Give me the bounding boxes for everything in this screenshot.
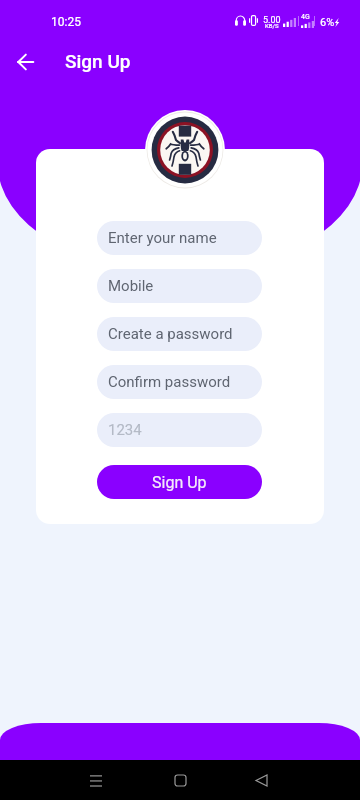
button[interactable]: Mobile: [97, 269, 262, 303]
staticText: Sign Up: [152, 473, 207, 492]
button[interactable]: Sign Up: [97, 465, 262, 499]
staticText: 6%: [320, 16, 335, 29]
button[interactable]: Recent apps: [76, 760, 116, 800]
staticText: 5.00: [263, 15, 281, 26]
staticText: Sign Up: [65, 50, 131, 72]
button[interactable]: Back: [9, 45, 42, 78]
staticText: 4G: [301, 13, 310, 21]
button[interactable]: Back: [241, 760, 281, 800]
staticText: Create a password: [108, 325, 233, 343]
button[interactable]: Confirm password: [97, 365, 262, 399]
staticText: Mobile: [108, 277, 154, 295]
staticText: KB/S: [265, 22, 279, 29]
button[interactable]: 1234: [97, 413, 262, 447]
button[interactable]: Create a password: [97, 317, 262, 351]
button[interactable]: Home: [160, 760, 200, 800]
staticText: Confirm password: [108, 373, 231, 391]
button[interactable]: Enter your name: [97, 221, 262, 255]
staticText: Enter your name: [108, 229, 217, 247]
staticText: 1234: [108, 421, 142, 439]
staticText: 10:25: [51, 15, 81, 29]
